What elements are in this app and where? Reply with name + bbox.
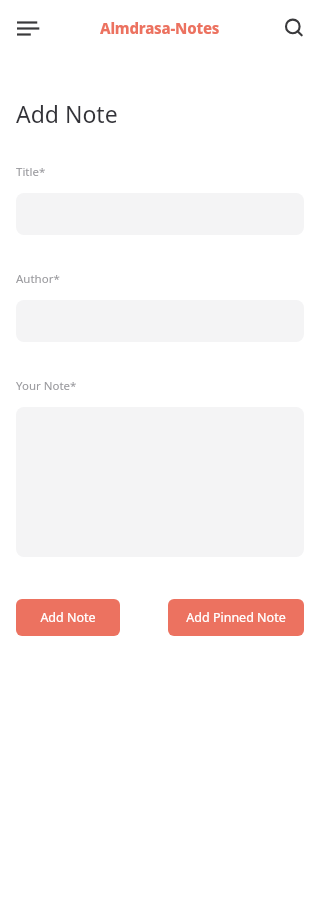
staticText: Add Pinned Note bbox=[186, 609, 286, 626]
button[interactable]: Menu bbox=[8, 8, 48, 48]
staticText: Almdrasa-Notes bbox=[100, 18, 220, 38]
staticText: Author* bbox=[16, 271, 60, 287]
button[interactable]: Add Pinned Note bbox=[168, 599, 304, 636]
staticText: Your Note* bbox=[16, 378, 77, 394]
button[interactable]: Search bbox=[274, 8, 314, 48]
button[interactable]: Add Note bbox=[16, 599, 120, 636]
staticText: Title* bbox=[16, 164, 46, 180]
staticText: Add Note bbox=[40, 609, 96, 626]
staticText: Add Note bbox=[16, 98, 118, 129]
